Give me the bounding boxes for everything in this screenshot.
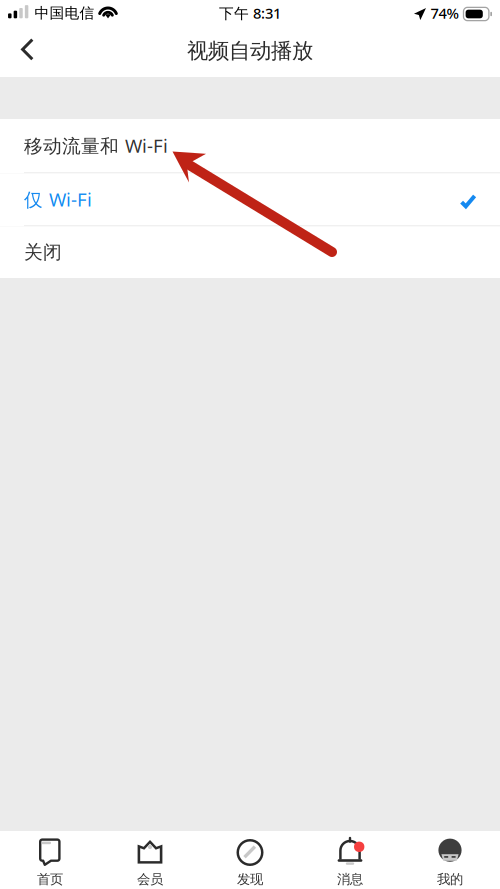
staticText: 视频自动播放 — [187, 38, 313, 64]
staticText: 关闭 — [24, 241, 62, 264]
staticText: 中国电信 — [34, 4, 94, 22]
staticText: 下午 8:31 — [219, 3, 281, 23]
staticText: 移动流量和 Wi-Fi — [24, 133, 168, 158]
staticText: 仅 Wi-Fi — [24, 187, 92, 212]
button[interactable]: 移动流量和 Wi-Fi — [0, 119, 500, 173]
staticText: 消息 — [337, 871, 363, 887]
staticText: 会员 — [137, 871, 163, 887]
staticText: 首页 — [37, 871, 63, 887]
button[interactable]: 消息 — [300, 831, 400, 889]
button[interactable]: 返回 — [0, 28, 50, 77]
button[interactable]: 会员 — [100, 831, 200, 889]
button[interactable]: 发现 — [200, 831, 300, 889]
staticText: 发现 — [237, 871, 263, 887]
button[interactable]: 仅 Wi-Fi — [0, 173, 500, 226]
staticText: 我的 — [437, 871, 463, 887]
button[interactable]: 我的 — [400, 831, 500, 889]
staticText: 74% — [430, 3, 458, 23]
button[interactable]: 首页 — [0, 831, 100, 889]
button[interactable]: 关闭 — [0, 226, 500, 278]
